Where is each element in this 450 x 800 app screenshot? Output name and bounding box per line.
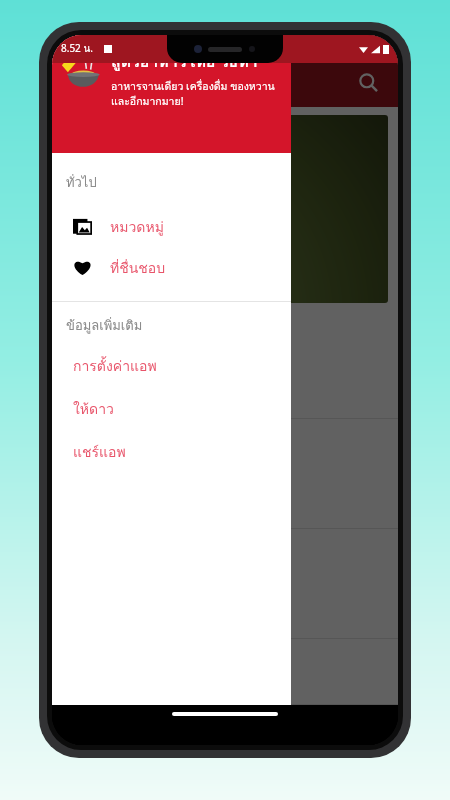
staticText: แชร์แอพ xyxy=(73,441,126,463)
staticText: การตั้งค่าแอพ xyxy=(73,355,157,377)
staticText: 8.52 น. xyxy=(61,41,93,57)
staticText: สูตรอาหารไทย วิธีทำ xyxy=(111,49,258,74)
staticText: ทั่วไป xyxy=(66,172,97,193)
staticText: อาหารจานเดียว เครื่องดื่ม ของหวาน และอีก… xyxy=(111,78,283,110)
staticText: หมวดหมู่ xyxy=(110,216,164,238)
staticText: สูตรอาหารไทย xyxy=(66,353,157,375)
button[interactable]: Search xyxy=(350,64,386,100)
button[interactable]: แชร์แอพ xyxy=(52,430,291,473)
button[interactable]: การตั้งค่าแอพ xyxy=(52,344,291,387)
staticText: สูตรอาหารไทย xyxy=(108,69,212,94)
staticText: ที่ชื่นชอบ xyxy=(110,257,166,279)
button[interactable]: ให้ดาว xyxy=(52,387,291,430)
staticText: ข้อมูลเพิ่มเติม xyxy=(66,315,143,336)
button[interactable]: หมวดหมู่ xyxy=(52,206,291,247)
staticText: ให้ดาว xyxy=(73,398,114,420)
button[interactable]: ที่ชื่นชอบ xyxy=(52,247,291,288)
